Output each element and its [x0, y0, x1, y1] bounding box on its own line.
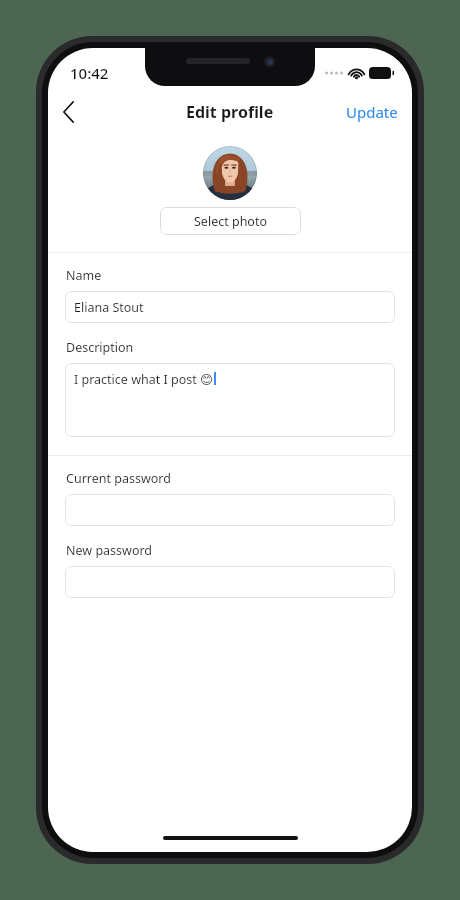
staticText: Select photo: [194, 213, 268, 230]
button[interactable]: [65, 566, 395, 598]
staticText: 10:42: [70, 63, 109, 83]
button[interactable]: [65, 494, 395, 526]
staticText: I practice what I post 😊: [74, 371, 213, 388]
button[interactable]: Update: [332, 94, 412, 130]
staticText: Current password: [66, 470, 171, 487]
staticText: Eliana Stout: [74, 299, 144, 316]
staticText: Update: [346, 102, 398, 122]
staticText: Description: [66, 339, 134, 356]
button[interactable]: Select photo: [160, 207, 301, 235]
button[interactable]: Profile photo: [203, 146, 257, 200]
button[interactable]: I practice what I post 😊: [65, 363, 395, 437]
staticText: Edit profile: [186, 101, 274, 123]
button[interactable]: Back: [48, 92, 88, 132]
button[interactable]: Eliana Stout: [65, 291, 395, 323]
staticText: New password: [66, 542, 153, 559]
staticText: Name: [66, 267, 102, 284]
